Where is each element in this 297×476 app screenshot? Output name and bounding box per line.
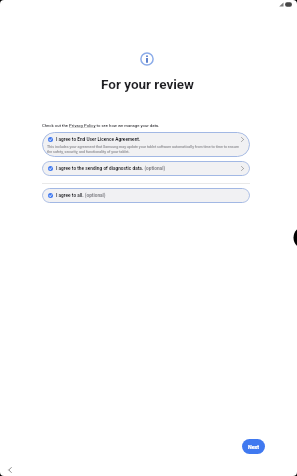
staticText: I agree to End User Licence Agreement. (56, 137, 141, 143)
button[interactable]: I agree to End User Licence Agreement. (42, 132, 250, 157)
button[interactable]: Back (4, 464, 15, 475)
button[interactable]: Next (242, 439, 265, 454)
staticText: Next (248, 444, 260, 450)
button[interactable]: I agree to the sending of diagnostic dat… (42, 161, 250, 176)
staticText: This includes your agreement that Samsun… (47, 145, 241, 154)
staticText: Check out the Privacy Policy to see how … (42, 123, 160, 128)
staticText: For your review (101, 76, 195, 92)
staticText: I agree to the sending of diagnostic dat… (56, 166, 166, 172)
button[interactable]: I agree to all. (optional) (42, 188, 250, 203)
staticText: I agree to all. (optional) (56, 193, 106, 199)
